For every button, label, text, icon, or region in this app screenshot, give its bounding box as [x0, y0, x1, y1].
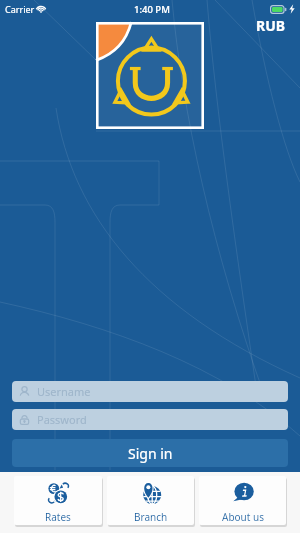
button[interactable]: About us: [199, 476, 286, 525]
staticText: About us: [222, 510, 264, 524]
staticText: Branch: [134, 510, 168, 524]
staticText: Rates: [45, 510, 71, 524]
button[interactable]: Username: [12, 381, 288, 402]
button[interactable]: Password: [12, 409, 288, 430]
button[interactable]: Branch: [107, 476, 194, 525]
staticText: RUB: [256, 16, 286, 35]
button[interactable]: Sign in: [12, 439, 288, 467]
staticText: Sign in: [128, 444, 173, 463]
button[interactable]: Rates: [14, 476, 102, 525]
staticText: 1:40 PM: [134, 3, 170, 16]
staticText: Password: [37, 412, 87, 427]
staticText: Username: [37, 384, 91, 399]
staticText: Carrier: [5, 3, 35, 15]
